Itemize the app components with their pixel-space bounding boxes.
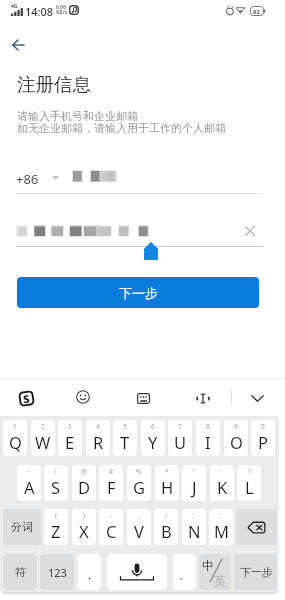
- button[interactable]: ": [182, 465, 206, 501]
- button[interactable]: ~: [17, 465, 41, 501]
- staticText: ，: [84, 568, 95, 582]
- staticText: H: [161, 476, 174, 498]
- staticText: ): [83, 511, 85, 520]
- button[interactable]: ': [210, 465, 234, 501]
- button[interactable]: 2: [31, 420, 55, 456]
- staticText: 4G: [11, 3, 18, 10]
- staticText: 下一步: [240, 565, 273, 579]
- staticText: Q: [9, 431, 22, 453]
- staticText: 如无企业邮箱，请输入用于工作的个人邮箱: [17, 121, 226, 135]
- button[interactable]: _: [127, 509, 151, 545]
- button[interactable]: 符: [3, 554, 37, 590]
- staticText: 82: [253, 8, 260, 16]
- button[interactable]: 6: [141, 420, 165, 456]
- staticText: F: [107, 476, 116, 498]
- button[interactable]: :: [209, 509, 233, 545]
- staticText: 6: [151, 422, 155, 431]
- staticText: X: [79, 520, 89, 542]
- button[interactable]: ): [72, 509, 96, 545]
- staticText: I: [205, 431, 211, 453]
- staticText: KB/s: [56, 9, 68, 16]
- button[interactable]: Move cursor: [195, 390, 211, 406]
- button[interactable]: 9: [224, 420, 248, 456]
- button[interactable]: ?: [237, 465, 261, 501]
- staticText: M: [214, 520, 229, 542]
- staticText: 5: [123, 422, 127, 431]
- staticText: U: [174, 431, 187, 453]
- staticText: K: [217, 476, 228, 498]
- button[interactable]: !: [44, 465, 68, 501]
- staticText: D: [78, 476, 91, 498]
- button[interactable]: #: [99, 465, 123, 501]
- button[interactable]: (: [44, 509, 68, 545]
- staticText: W: [35, 431, 51, 453]
- staticText: N: [188, 520, 201, 542]
- staticText: /: [165, 511, 168, 520]
- staticText: G: [133, 476, 146, 498]
- staticText: (: [55, 511, 57, 520]
- staticText: 分词: [11, 520, 33, 534]
- staticText: P: [258, 431, 268, 453]
- button[interactable]: Emoji: [75, 389, 91, 405]
- staticText: 123: [48, 565, 67, 580]
- button[interactable]: 8: [196, 420, 220, 456]
- staticText: 请输入手机号和企业邮箱: [17, 109, 138, 123]
- staticText: %: [136, 467, 142, 476]
- staticText: 1: [13, 422, 17, 431]
- button[interactable]: Backspace: [236, 509, 277, 545]
- button[interactable]: 。: [173, 554, 196, 590]
- staticText: C: [106, 520, 117, 542]
- staticText: ~: [27, 467, 31, 476]
- staticText: E: [65, 431, 75, 453]
- button[interactable]: 123: [40, 554, 74, 590]
- staticText: B: [161, 520, 172, 542]
- staticText: Y: [148, 431, 158, 453]
- staticText: @: [81, 467, 87, 476]
- button[interactable]: 下一步: [234, 554, 277, 590]
- button[interactable]: Hide keyboard: [249, 390, 265, 406]
- button[interactable]: 4: [86, 420, 110, 456]
- button[interactable]: @: [72, 465, 96, 501]
- button[interactable]: 下一步: [17, 277, 259, 308]
- button[interactable]: Space / voice input: [107, 554, 167, 590]
- staticText: #: [109, 467, 114, 476]
- button[interactable]: Switch keyboard: [135, 390, 151, 406]
- staticText: 符: [15, 565, 26, 579]
- button[interactable]: -: [99, 509, 123, 545]
- staticText: 3: [68, 422, 72, 431]
- button[interactable]: Back: [5, 32, 31, 58]
- staticText: 0: [261, 422, 265, 431]
- staticText: S: [22, 391, 31, 406]
- button[interactable]: ，: [78, 554, 101, 590]
- button[interactable]: /: [154, 509, 178, 545]
- button[interactable]: Sogou input settings: [18, 390, 34, 406]
- staticText: 7: [178, 422, 182, 431]
- button[interactable]: 7: [168, 420, 192, 456]
- button[interactable]: ;: [182, 509, 206, 545]
- staticText: 2: [41, 422, 45, 431]
- staticText: _: [138, 511, 141, 520]
- staticText: 8: [206, 422, 210, 431]
- button[interactable]: 3: [58, 420, 82, 456]
- button[interactable]: Clear: [240, 221, 259, 240]
- staticText: 9: [234, 422, 238, 431]
- staticText: 下一步: [119, 285, 158, 301]
- staticText: ": [193, 467, 196, 476]
- staticText: R: [93, 431, 104, 453]
- staticText: +86: [16, 170, 39, 188]
- staticText: -: [110, 511, 113, 520]
- staticText: L: [245, 476, 254, 498]
- button[interactable]: %: [127, 465, 151, 501]
- staticText: V: [134, 520, 144, 542]
- staticText: Z: [51, 520, 61, 542]
- button[interactable]: 1: [3, 420, 27, 456]
- staticText: A: [24, 476, 35, 498]
- staticText: 中: [202, 558, 214, 573]
- button[interactable]: Chinese / English: [199, 554, 231, 590]
- button[interactable]: *: [155, 465, 179, 501]
- button[interactable]: 分词: [3, 509, 41, 545]
- staticText: *: [165, 467, 169, 476]
- button[interactable]: 0: [251, 420, 275, 456]
- button[interactable]: 5: [113, 420, 137, 456]
- staticText: :: [220, 511, 222, 520]
